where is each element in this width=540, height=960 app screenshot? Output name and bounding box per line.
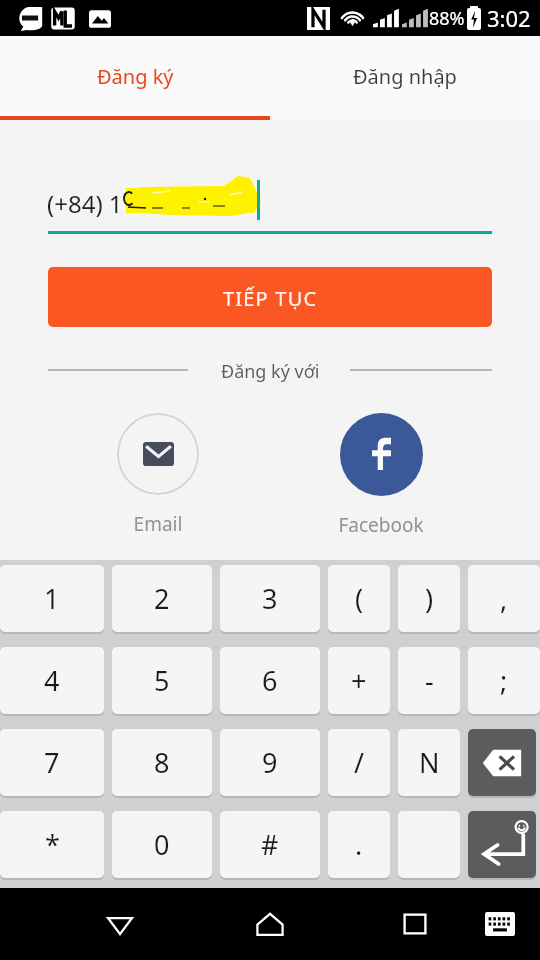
- button[interactable]: Space: [398, 811, 460, 878]
- staticText: 1: [44, 580, 60, 617]
- button[interactable]: 0: [112, 811, 212, 878]
- button[interactable]: Facebook: [311, 413, 451, 538]
- button[interactable]: [48, 180, 492, 234]
- staticText: 2: [154, 580, 170, 617]
- button[interactable]: 1: [0, 565, 104, 632]
- button[interactable]: 5: [112, 647, 212, 714]
- staticText: .: [355, 826, 363, 863]
- staticText: (: [355, 580, 364, 617]
- button[interactable]: 2: [112, 565, 212, 632]
- staticText: ,: [500, 580, 508, 617]
- button[interactable]: 9: [220, 729, 320, 796]
- button[interactable]: 6: [220, 647, 320, 714]
- button[interactable]: *: [0, 811, 104, 878]
- staticText: TIẾP TỤC: [223, 285, 318, 312]
- staticText: ): [425, 580, 434, 617]
- button[interactable]: +: [328, 647, 390, 714]
- button[interactable]: Email: [88, 413, 228, 537]
- staticText: +: [351, 662, 367, 699]
- button[interactable]: Backspace: [468, 729, 536, 796]
- button[interactable]: 3: [220, 565, 320, 632]
- button[interactable]: Recents: [392, 888, 437, 960]
- staticText: #: [261, 826, 279, 863]
- staticText: (+84) 1: [47, 187, 123, 220]
- staticText: N: [419, 744, 440, 781]
- button[interactable]: -: [398, 647, 460, 714]
- staticText: 3:02: [487, 3, 531, 33]
- staticText: Đăng nhập: [353, 63, 457, 90]
- staticText: /: [354, 744, 365, 781]
- staticText: 6: [262, 662, 278, 699]
- staticText: Facebook: [311, 512, 451, 538]
- staticText: 4: [44, 662, 60, 699]
- staticText: 3: [262, 580, 278, 617]
- staticText: 5: [154, 662, 170, 699]
- button[interactable]: 8: [112, 729, 212, 796]
- button[interactable]: 4: [0, 647, 104, 714]
- button[interactable]: N: [398, 729, 460, 796]
- button[interactable]: ,: [468, 565, 540, 632]
- staticText: 88%: [429, 6, 465, 31]
- button[interactable]: .: [328, 811, 390, 878]
- button[interactable]: (: [328, 565, 390, 632]
- button[interactable]: #: [220, 811, 320, 878]
- button[interactable]: /: [328, 729, 390, 796]
- staticText: 9: [262, 744, 278, 781]
- staticText: Email: [88, 511, 228, 537]
- staticText: Đăng ký với: [221, 359, 320, 384]
- staticText: -: [425, 662, 434, 699]
- staticText: *: [45, 826, 60, 863]
- button[interactable]: Back: [97, 888, 142, 960]
- button[interactable]: TIẾP TỤC: [48, 267, 492, 327]
- staticText: ;: [500, 662, 508, 699]
- button[interactable]: Đăng ký: [0, 36, 270, 120]
- staticText: 0: [154, 826, 170, 863]
- button[interactable]: Đăng nhập: [270, 36, 540, 120]
- button[interactable]: ): [398, 565, 460, 632]
- staticText: 7: [44, 744, 60, 781]
- button[interactable]: Switch keyboard: [478, 888, 522, 960]
- staticText: Đăng ký: [97, 63, 174, 90]
- button[interactable]: 7: [0, 729, 104, 796]
- button[interactable]: ;: [468, 647, 540, 714]
- button[interactable]: Enter: [468, 811, 536, 878]
- staticText: 8: [154, 744, 170, 781]
- button[interactable]: Home: [247, 888, 292, 960]
